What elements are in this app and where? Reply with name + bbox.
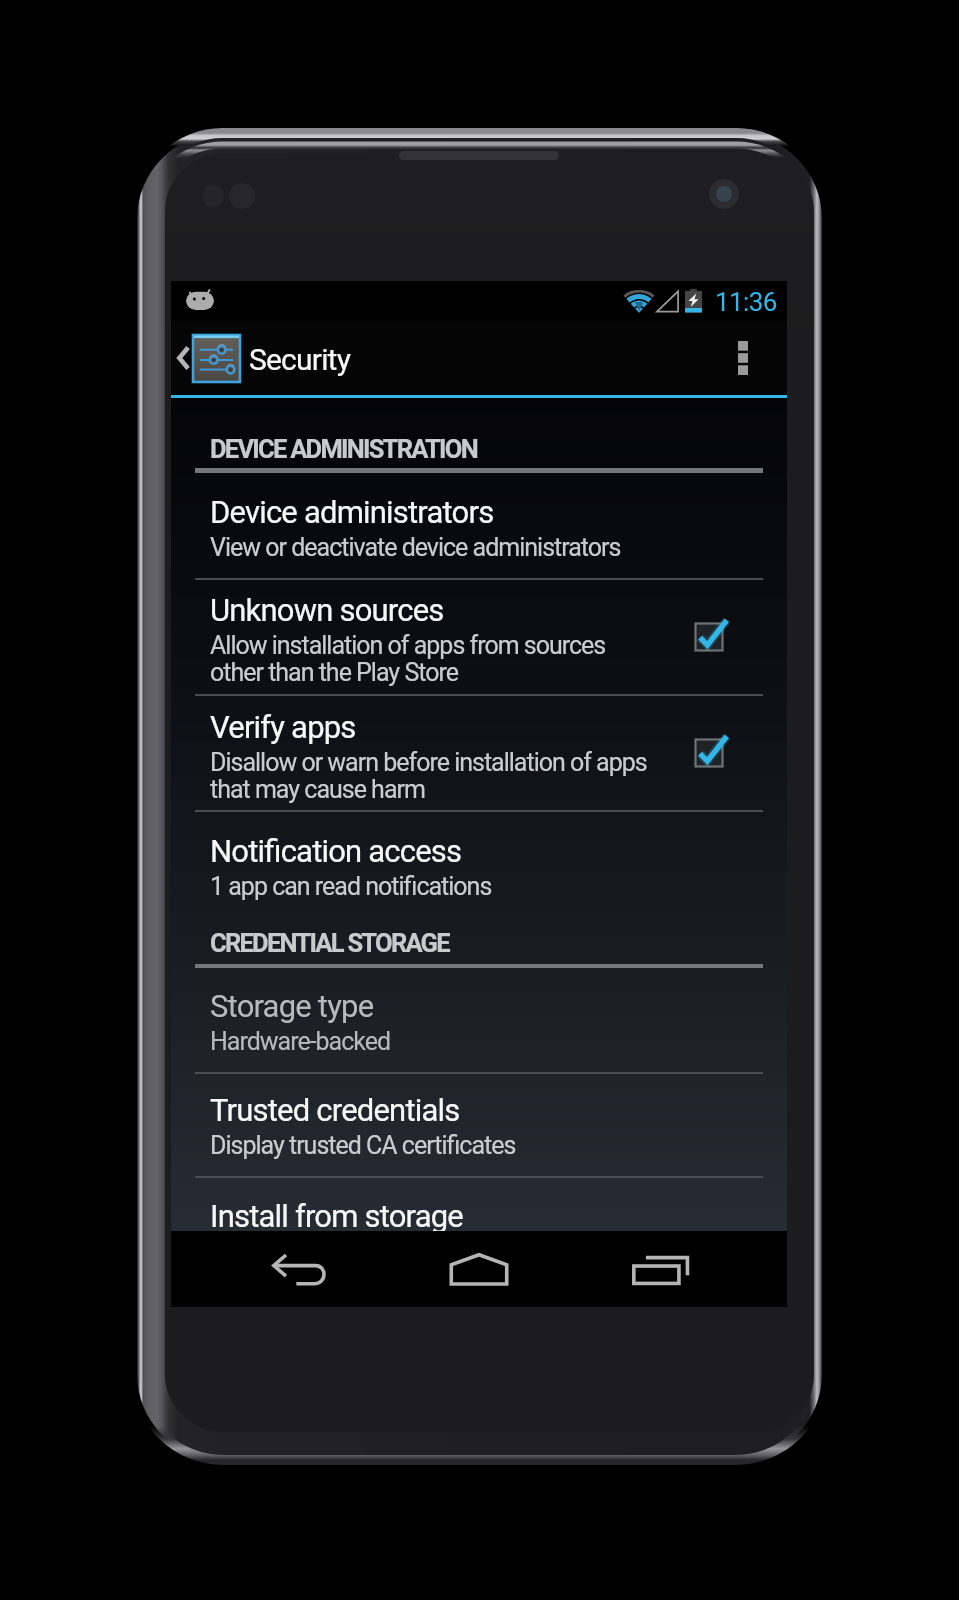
- staticText: Security: [249, 342, 351, 377]
- button[interactable]: Home: [427, 1231, 531, 1307]
- staticText: Verify apps: [210, 709, 356, 745]
- button[interactable]: Recent apps: [608, 1231, 712, 1307]
- button[interactable]: Back: [247, 1231, 351, 1307]
- staticText: Trusted credentials: [210, 1092, 460, 1128]
- staticText: Display trusted CA certificates: [210, 1131, 516, 1160]
- staticText: DEVICE ADMINISTRATION: [210, 434, 477, 464]
- button[interactable]: Checkbox: [682, 696, 736, 810]
- button[interactable]: Checkbox: [682, 580, 736, 694]
- staticText: 1 app can read notifications: [210, 872, 492, 901]
- staticText: Disallow or warn before installation of …: [210, 748, 647, 804]
- button[interactable]: Navigate up: [171, 321, 244, 395]
- staticText: Notification access: [210, 833, 462, 869]
- button[interactable]: Notification access: [171, 812, 787, 908]
- staticText: Unknown sources: [210, 592, 444, 628]
- staticText: Install from storage: [210, 1198, 463, 1231]
- button[interactable]: Install from storage: [171, 1178, 787, 1231]
- button[interactable]: Verify apps: [171, 696, 787, 810]
- button[interactable]: Trusted credentials: [171, 1074, 787, 1176]
- staticText: View or deactivate device administrators: [210, 533, 621, 562]
- staticText: Allow installation of apps from sources …: [210, 631, 606, 687]
- button[interactable]: Unknown sources: [171, 580, 787, 694]
- button[interactable]: Device administrators: [171, 473, 787, 578]
- staticText: Hardware-backed: [210, 1027, 391, 1056]
- staticText: Storage type: [210, 988, 374, 1024]
- staticText: CREDENTIAL STORAGE: [210, 928, 449, 958]
- button[interactable]: More options: [713, 321, 773, 395]
- button[interactable]: Storage type: [171, 968, 787, 1072]
- staticText: Device administrators: [210, 494, 494, 530]
- staticText: 11:36: [715, 287, 777, 317]
